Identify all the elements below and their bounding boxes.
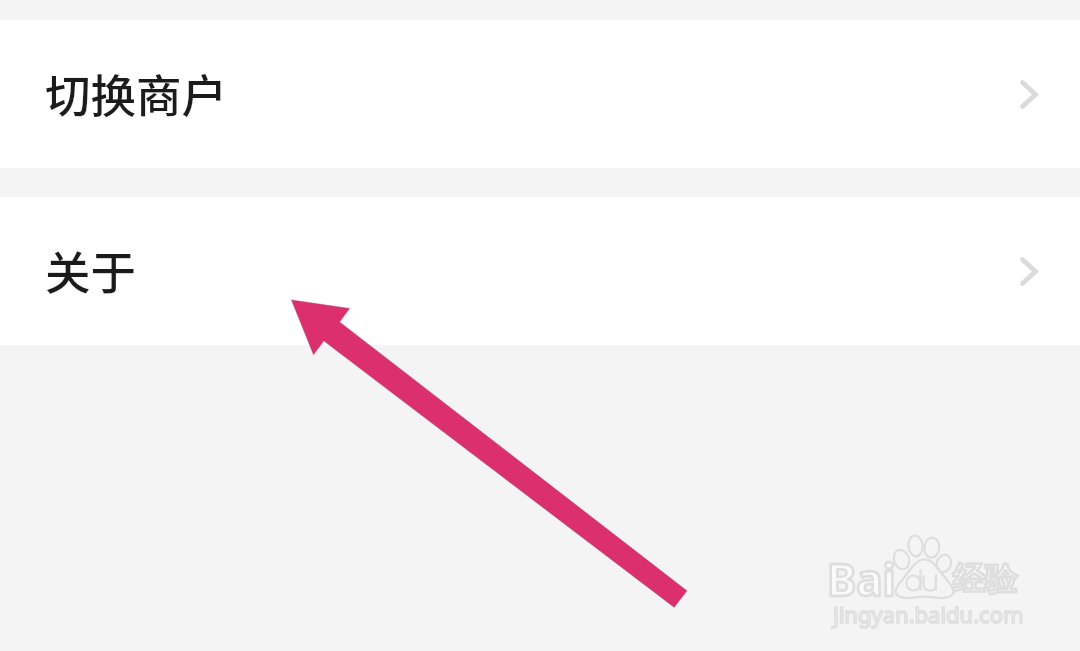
other: Open 切换商户 xyxy=(1020,80,1038,109)
staticText: Bai xyxy=(827,549,896,609)
staticText: Bai xyxy=(827,549,896,609)
staticText: 关于 xyxy=(45,237,137,303)
button[interactable]: 切换商户 xyxy=(0,20,1080,168)
staticText: 切换商户 xyxy=(45,60,228,126)
staticText: 经验 xyxy=(953,559,1017,599)
staticText: 经验 xyxy=(953,559,1017,599)
staticText: jingyan.baidu.com xyxy=(833,599,1024,629)
staticText: jingyan.baidu.com xyxy=(833,599,1024,629)
button[interactable]: 关于 xyxy=(0,197,1080,345)
other: Open 关于 xyxy=(1020,257,1038,286)
